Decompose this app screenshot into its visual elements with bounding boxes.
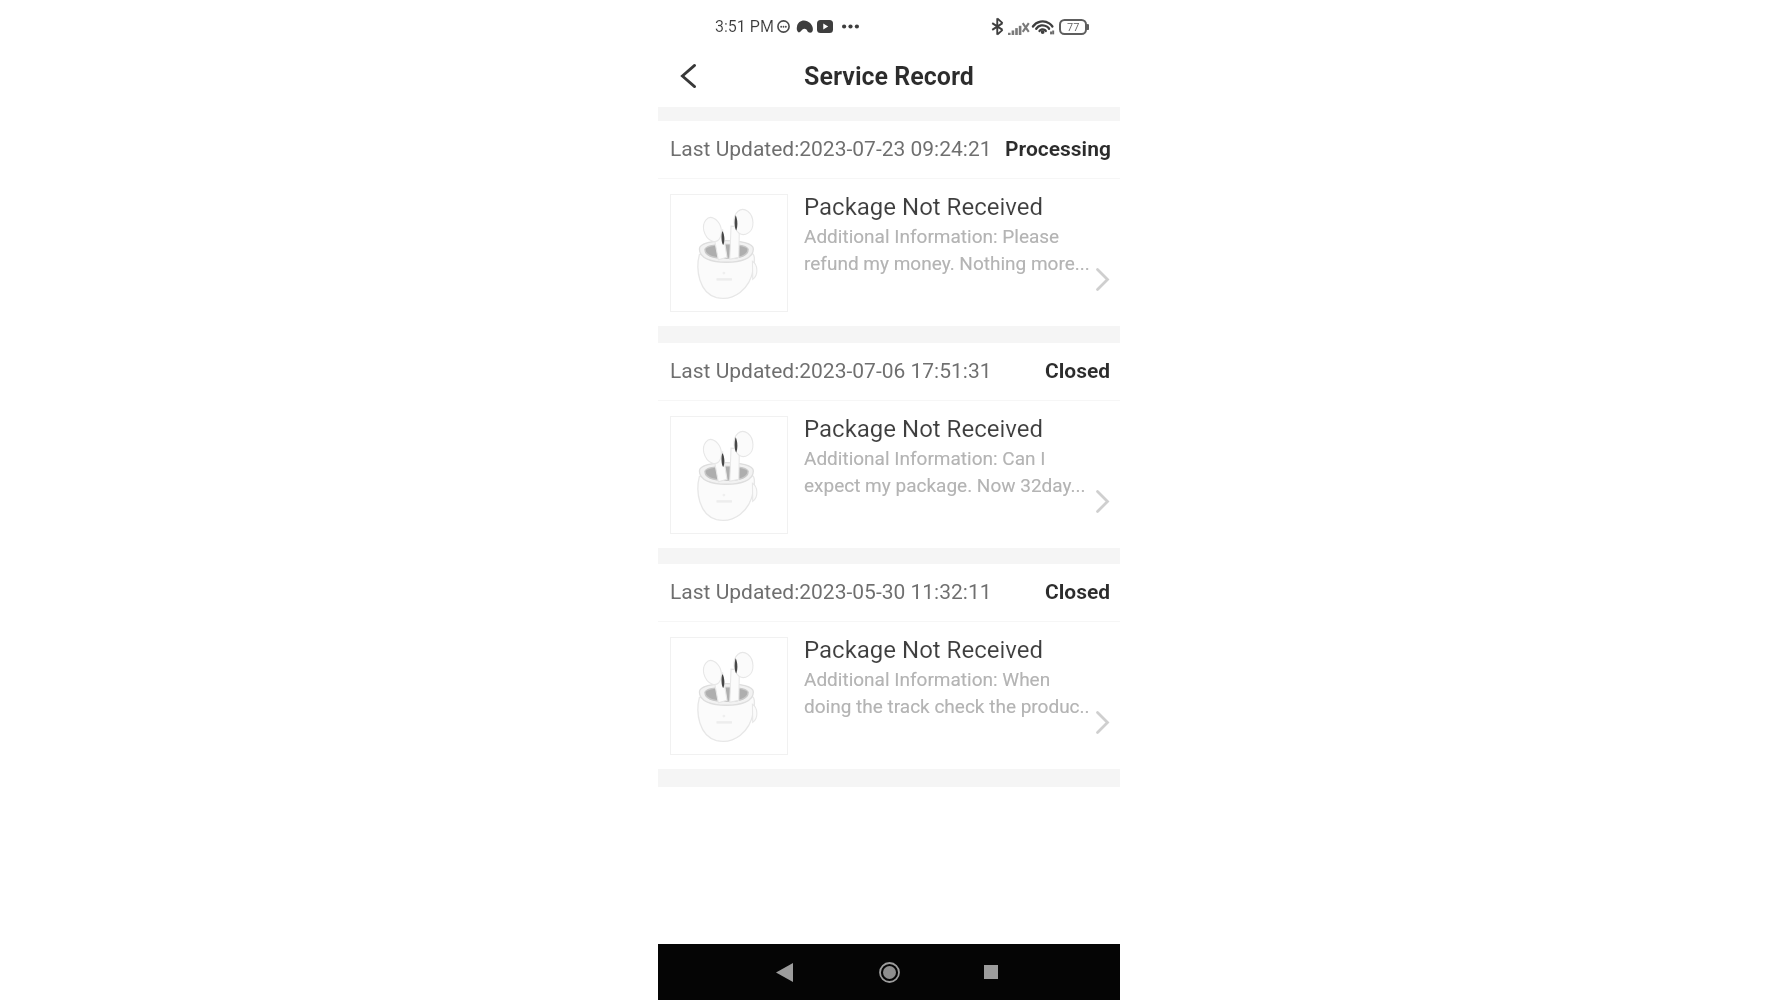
- staticText: Processing: [1005, 137, 1111, 162]
- staticText: Additional Information: Please: [804, 225, 1060, 247]
- button[interactable]: Back: [758, 946, 810, 998]
- button[interactable]: Home: [863, 946, 915, 998]
- staticText: Package Not Received: [804, 193, 1043, 221]
- staticText: Last Updated:2023-07-06 17:51:31: [670, 359, 992, 384]
- staticText: Package Not Received: [804, 636, 1043, 664]
- button[interactable]: Last Updated:2023-05-30 11:32:11: [658, 564, 1120, 769]
- staticText: Closed: [1045, 359, 1111, 384]
- staticText: Additional Information: When: [804, 668, 1051, 690]
- button[interactable]: Recent apps: [965, 946, 1017, 998]
- staticText: Additional Information: Can I: [804, 447, 1046, 469]
- button[interactable]: Back: [665, 53, 711, 99]
- staticText: Closed: [1045, 580, 1111, 605]
- button[interactable]: Last Updated:2023-07-06 17:51:31: [658, 343, 1120, 548]
- staticText: Last Updated:2023-07-23 09:24:21: [670, 137, 992, 162]
- staticText: expect my package. Now 32day...: [804, 474, 1086, 496]
- staticText: 77: [1067, 21, 1080, 34]
- staticText: Package Not Received: [804, 415, 1043, 443]
- staticText: Service Record: [804, 62, 974, 91]
- staticText: refund my money. Nothing more...: [804, 252, 1089, 274]
- staticText: 3:51 PM: [715, 17, 774, 36]
- staticText: doing the track check the produc...: [804, 695, 1089, 717]
- button[interactable]: Last Updated:2023-07-23 09:24:21: [658, 121, 1120, 326]
- staticText: Last Updated:2023-05-30 11:32:11: [670, 580, 992, 605]
